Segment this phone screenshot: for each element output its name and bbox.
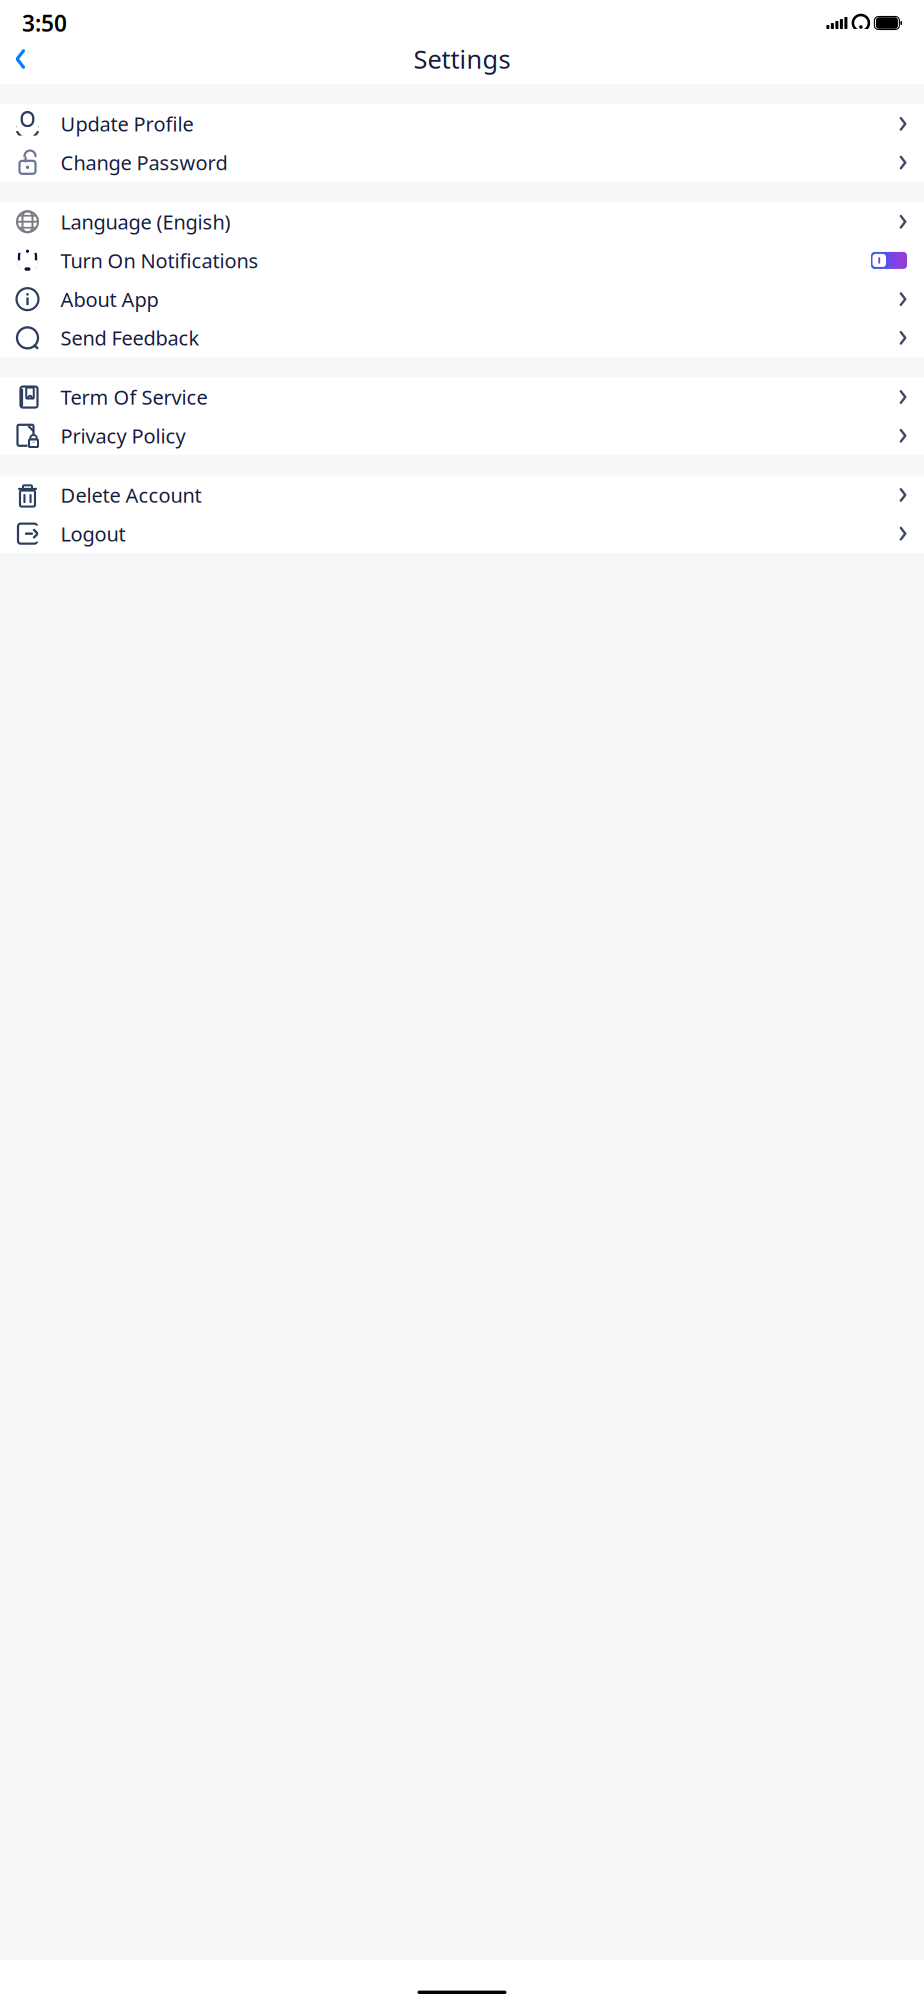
button[interactable]: Term Of Service xyxy=(0,378,924,416)
button[interactable]: Delete Account xyxy=(0,476,924,514)
button[interactable]: About App xyxy=(0,280,924,318)
button[interactable]: Turn On Notifications xyxy=(0,241,924,280)
staticText: Term Of Service xyxy=(60,384,207,410)
button[interactable]: Logout xyxy=(0,514,924,553)
button[interactable]: Update Profile xyxy=(0,104,924,143)
button[interactable]: Language (Engish) xyxy=(0,202,924,241)
button[interactable]: Privacy Policy xyxy=(0,416,924,455)
staticText: Update Profile xyxy=(60,111,193,137)
staticText: 3:50 xyxy=(22,8,67,38)
staticText: Privacy Policy xyxy=(60,422,185,449)
button[interactable]: Send Feedback xyxy=(0,318,924,357)
staticText: About App xyxy=(60,286,158,312)
staticText: Turn On Notifications xyxy=(60,247,258,274)
staticText: Settings xyxy=(413,42,510,76)
staticText: Change Password xyxy=(60,149,227,176)
staticText: Send Feedback xyxy=(60,325,199,351)
button[interactable]: Back xyxy=(0,39,27,79)
button[interactable]: Change Password xyxy=(0,143,924,182)
button[interactable]: Turn On Notifications xyxy=(871,252,907,269)
staticText: Language (Engish) xyxy=(60,208,230,235)
staticText: Delete Account xyxy=(60,482,201,508)
staticText: Logout xyxy=(60,520,125,547)
